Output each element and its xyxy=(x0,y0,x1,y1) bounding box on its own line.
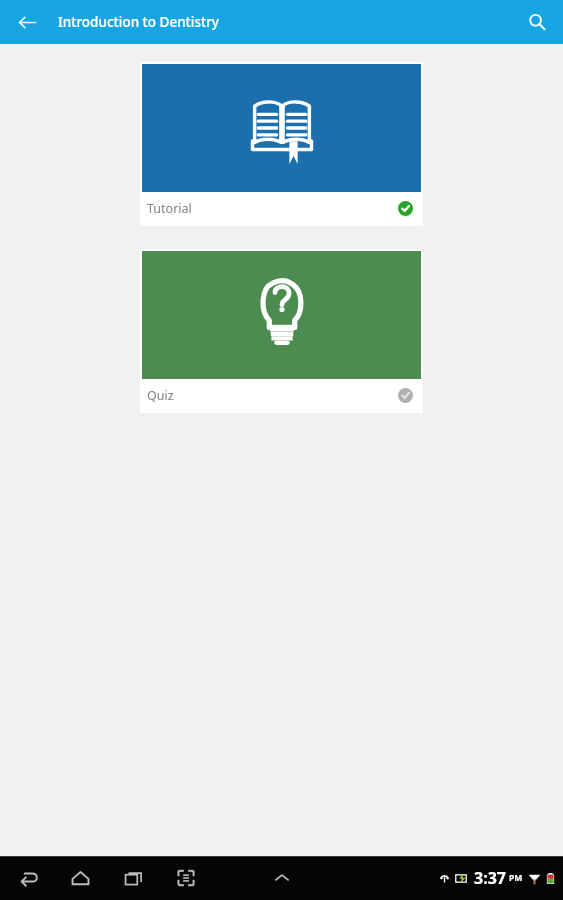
button[interactable]: Quiz xyxy=(140,249,423,413)
staticText: Quiz xyxy=(147,387,174,404)
staticText: Introduction to Dentistry xyxy=(58,13,220,31)
button[interactable]: Search xyxy=(519,4,555,40)
button[interactable]: Screenshot xyxy=(168,860,204,896)
staticText: 3:37 xyxy=(474,867,506,889)
button[interactable]: Recent apps xyxy=(115,860,151,896)
button[interactable]: Tutorial xyxy=(140,62,423,226)
staticText: PM xyxy=(509,872,523,884)
button[interactable]: Back xyxy=(10,860,46,896)
button[interactable]: Back xyxy=(10,5,44,39)
staticText: Tutorial xyxy=(147,200,192,217)
button[interactable]: Home xyxy=(62,860,98,896)
button[interactable]: Show navigation xyxy=(264,860,300,896)
